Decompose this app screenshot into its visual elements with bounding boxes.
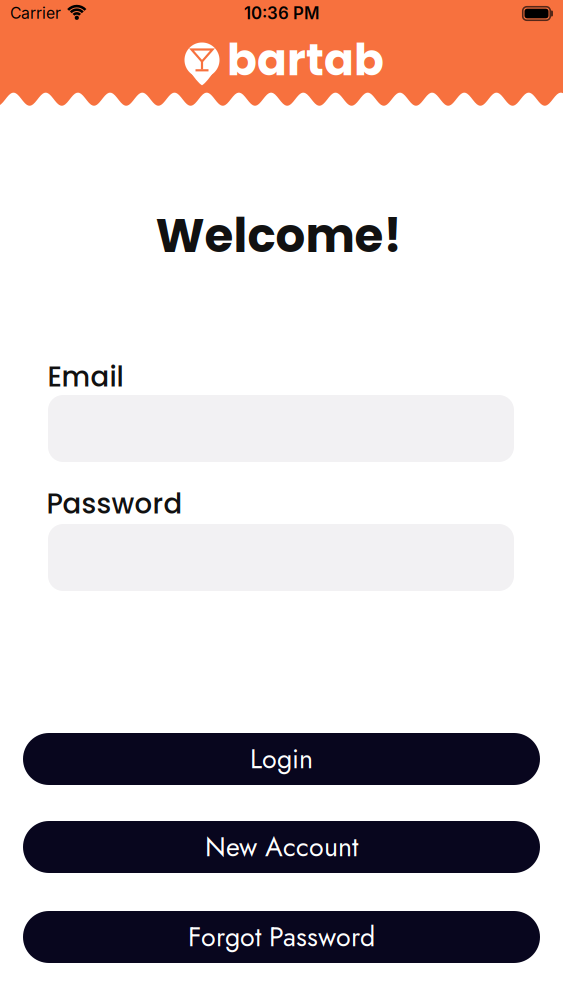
button[interactable]: New Account [23, 821, 540, 873]
staticText: Password [46, 484, 182, 523]
staticText: New Account [205, 828, 358, 866]
staticText: Forgot Password [188, 918, 375, 956]
button[interactable]: Login [23, 733, 540, 785]
staticText: Carrier [10, 3, 61, 22]
staticText: Email [47, 357, 123, 396]
button[interactable]: Forgot Password [23, 911, 540, 963]
staticText: 10:36 PM [244, 3, 319, 23]
staticText: bartab [227, 29, 384, 91]
staticText: Login [250, 740, 313, 778]
staticText: Welcome! [155, 203, 401, 268]
